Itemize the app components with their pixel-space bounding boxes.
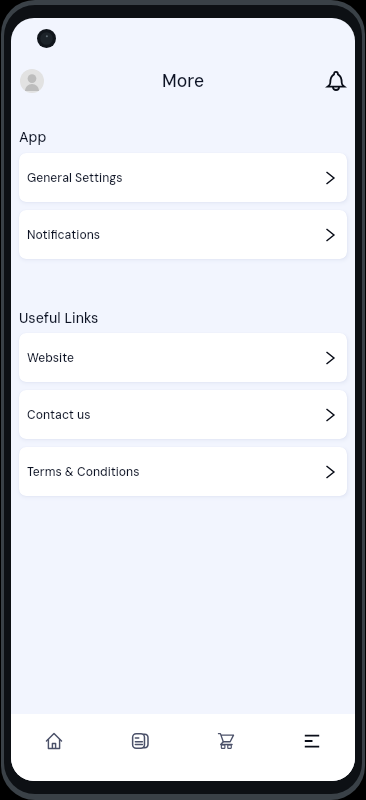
button[interactable]: Terms & Conditions: [19, 447, 347, 496]
staticText: Website: [27, 350, 323, 366]
button[interactable]: More: [269, 714, 355, 767]
staticText: Contact us: [27, 407, 323, 423]
staticText: App: [19, 128, 47, 146]
button[interactable]: Profile: [14, 63, 50, 99]
button[interactable]: Notifications: [19, 210, 347, 259]
button[interactable]: Notifications: [318, 63, 354, 99]
staticText: Notifications: [27, 227, 323, 243]
staticText: General Settings: [27, 170, 323, 186]
button[interactable]: Website: [19, 333, 347, 382]
staticText: Terms & Conditions: [27, 464, 323, 480]
staticText: More: [162, 70, 205, 93]
button[interactable]: General Settings: [19, 153, 347, 202]
button[interactable]: Contact us: [19, 390, 347, 439]
button[interactable]: News: [97, 714, 183, 767]
staticText: Useful Links: [19, 309, 99, 327]
button[interactable]: Home: [11, 714, 97, 767]
button[interactable]: Cart: [183, 714, 269, 767]
